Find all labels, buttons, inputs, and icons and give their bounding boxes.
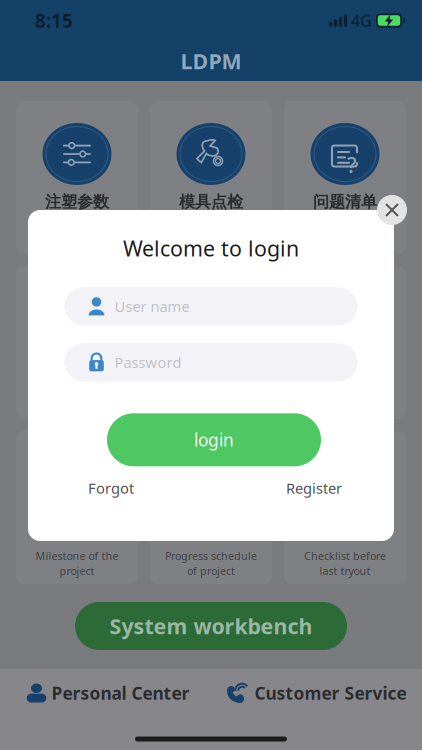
button[interactable]: login	[107, 413, 321, 466]
staticText: User name	[114, 297, 189, 316]
staticText: 8:15	[35, 8, 73, 33]
staticText: 试模清单	[313, 522, 377, 542]
staticText: Customer Service	[254, 681, 406, 704]
button[interactable]: ?	[284, 266, 406, 419]
staticText: 4G	[351, 10, 372, 31]
button[interactable]: Password	[64, 343, 357, 381]
staticText: Checklist before	[304, 549, 386, 563]
button[interactable]: System workbench	[75, 602, 347, 650]
staticText: 项目节点	[45, 522, 109, 542]
button[interactable]: 项目节点	[16, 431, 138, 584]
staticText: project	[59, 564, 94, 578]
staticText: System workbench	[109, 612, 312, 640]
staticText: 注塑参数	[45, 192, 109, 212]
button[interactable]: Forgot	[88, 478, 134, 498]
staticText: Register	[286, 478, 342, 498]
staticText: 设备清单	[179, 357, 243, 377]
staticText: Forgot	[88, 478, 134, 498]
staticText: 质量报告	[313, 357, 377, 377]
staticText: 项目进度	[179, 522, 243, 542]
staticText: 工艺参数	[45, 357, 109, 377]
button[interactable]: 工艺参数	[16, 266, 138, 419]
staticText: login	[194, 428, 234, 451]
staticText: last tryout	[319, 564, 370, 578]
button[interactable]: Personal Center	[0, 669, 211, 714]
button[interactable]: 模具点检	[150, 101, 272, 254]
staticText: Password	[114, 353, 181, 372]
staticText: Milestone of the	[35, 549, 118, 563]
button[interactable]: Register	[286, 478, 342, 498]
staticText: Progress schedule	[165, 549, 257, 563]
staticText: of project	[187, 564, 235, 578]
button[interactable]: 注塑参数	[16, 101, 138, 254]
staticText: LDPM	[180, 47, 241, 75]
button[interactable]: ?	[284, 431, 406, 584]
staticText: Personal Center	[51, 681, 189, 704]
button[interactable]: ?	[284, 101, 406, 254]
staticText: ?	[347, 315, 357, 344]
button[interactable]: 项目进度	[150, 431, 272, 584]
button[interactable]: User name	[64, 287, 357, 325]
staticText: 模具点检	[179, 192, 243, 212]
staticText: inspection	[184, 234, 237, 248]
staticText: Welcome to login	[123, 234, 299, 262]
button[interactable]: Customer Service	[211, 669, 422, 714]
button[interactable]: Close	[377, 195, 407, 225]
staticText: 问题清单	[313, 192, 377, 212]
staticText: ?	[347, 150, 357, 179]
button[interactable]: 设备清单	[150, 266, 272, 419]
